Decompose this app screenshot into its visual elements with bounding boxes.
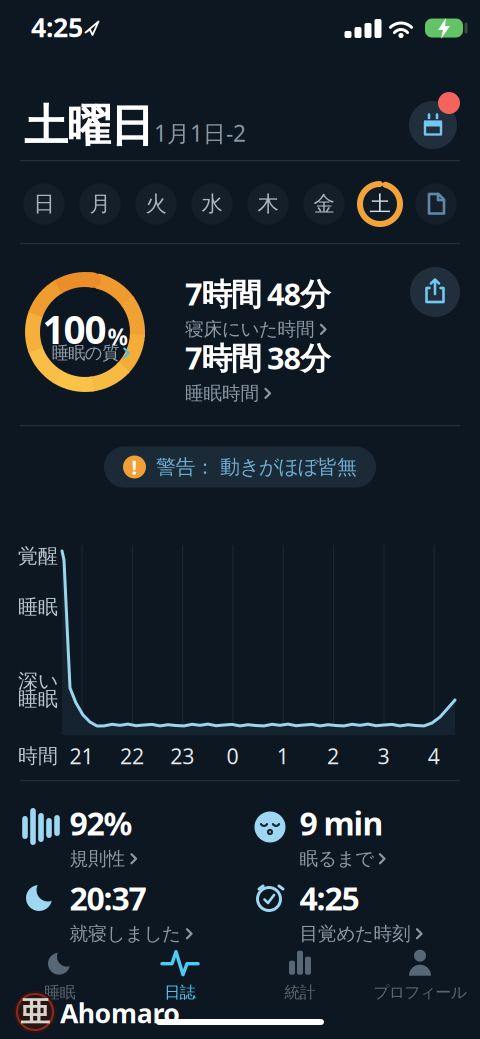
- staticText: 日: [33, 191, 54, 217]
- staticText: 亜: [20, 994, 49, 1030]
- staticText: 木: [257, 191, 278, 217]
- staticText: 警告： 動きがほぼ皆無: [156, 455, 357, 479]
- staticText: 0: [226, 742, 238, 770]
- button[interactable]: 9 min: [299, 802, 480, 870]
- button[interactable]: 100: [5, 257, 165, 407]
- staticText: 92%: [69, 802, 132, 844]
- staticText: 睡眠の質: [52, 342, 119, 364]
- button[interactable]: Sleep: [0, 948, 125, 1002]
- button[interactable]: Notes: [415, 183, 456, 224]
- button[interactable]: Share: [410, 267, 460, 317]
- staticText: 眠るまで: [299, 847, 374, 870]
- staticText: 深い: [18, 669, 58, 693]
- staticText: 統計: [284, 983, 316, 1002]
- staticText: 23: [170, 742, 194, 770]
- staticText: 土曜日: [24, 99, 154, 153]
- staticText: 2: [327, 742, 339, 770]
- button[interactable]: 日: [23, 183, 64, 224]
- staticText: 9 min: [299, 802, 383, 844]
- button[interactable]: 土: [356, 180, 404, 228]
- button[interactable]: 20:37: [69, 877, 254, 945]
- staticText: 時間: [18, 744, 58, 768]
- staticText: 21: [70, 742, 94, 770]
- staticText: 7時間 38分: [185, 337, 331, 378]
- staticText: 睡眠時間: [185, 382, 259, 405]
- button[interactable]: 7時間 48分: [185, 273, 405, 341]
- button[interactable]: !: [104, 446, 376, 487]
- staticText: 100: [42, 303, 106, 355]
- staticText: 4:25: [299, 877, 359, 919]
- staticText: 4:25: [31, 9, 83, 45]
- staticText: Ahomaro: [60, 995, 180, 1031]
- button[interactable]: Calendar: [409, 101, 457, 149]
- button[interactable]: 92%: [69, 802, 254, 870]
- button[interactable]: 金: [303, 183, 344, 224]
- button[interactable]: 火: [135, 183, 176, 224]
- staticText: 土: [369, 191, 390, 217]
- button[interactable]: 7時間 38分: [185, 337, 405, 405]
- staticText: !: [131, 454, 137, 480]
- staticText: 目覚めた時刻: [299, 922, 411, 945]
- staticText: 金: [313, 191, 334, 217]
- staticText: 火: [145, 191, 166, 217]
- staticText: 4: [428, 742, 440, 770]
- staticText: 睡眠: [18, 595, 58, 619]
- staticText: 水: [201, 191, 222, 217]
- staticText: 7時間 48分: [185, 273, 331, 314]
- button[interactable]: 4:25: [299, 877, 480, 945]
- staticText: 1月1日-2: [154, 118, 246, 148]
- button[interactable]: Profile: [355, 948, 480, 1002]
- staticText: 睡眠: [44, 983, 76, 1002]
- button[interactable]: 水: [191, 183, 232, 224]
- staticText: 22: [120, 742, 144, 770]
- staticText: 睡眠: [18, 687, 58, 711]
- button[interactable]: Journal: [115, 948, 245, 1002]
- staticText: 就寝しました: [69, 922, 181, 945]
- staticText: 寝床にいた時間: [185, 318, 315, 341]
- staticText: プロフィール: [373, 983, 467, 1002]
- staticText: %: [107, 322, 127, 352]
- button[interactable]: 木: [247, 183, 288, 224]
- staticText: 規則性: [69, 847, 125, 870]
- button[interactable]: Statistics: [235, 948, 365, 1002]
- staticText: 日誌: [164, 983, 196, 1002]
- staticText: 3: [377, 742, 389, 770]
- staticText: 1: [277, 742, 289, 770]
- staticText: 月: [89, 191, 110, 217]
- staticText: 20:37: [69, 877, 146, 919]
- staticText: 覚醒: [18, 544, 58, 568]
- button[interactable]: 月: [79, 183, 120, 224]
